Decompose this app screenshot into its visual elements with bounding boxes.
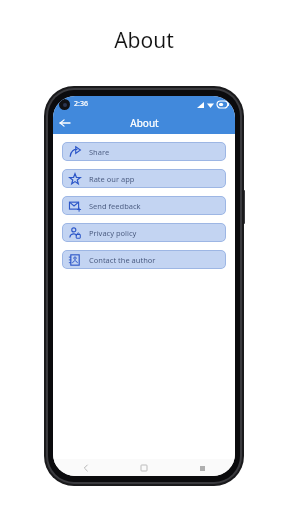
staticText: Send feedback <box>89 201 141 211</box>
staticText: Contact the author <box>89 255 156 265</box>
button[interactable]: Rate our app <box>62 169 226 188</box>
button[interactable]: Home <box>137 461 151 475</box>
staticText: Share <box>89 147 110 157</box>
staticText: About <box>130 116 159 130</box>
button[interactable]: Contact the author <box>62 250 226 269</box>
button[interactable]: Recent apps <box>195 461 209 475</box>
button[interactable]: Back <box>79 461 93 475</box>
staticText: 2:36 <box>74 99 88 109</box>
staticText: Rate our app <box>89 174 135 184</box>
button[interactable]: Back <box>56 114 74 132</box>
staticText: About <box>114 26 174 55</box>
button[interactable]: Send feedback <box>62 196 226 215</box>
button[interactable]: Privacy policy <box>62 223 226 242</box>
button[interactable]: Share <box>62 142 226 161</box>
staticText: Privacy policy <box>89 228 137 238</box>
